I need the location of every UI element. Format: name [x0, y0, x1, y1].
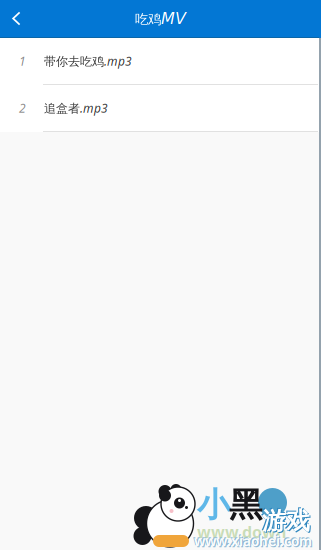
staticText: 带你去吃鸡.mp3 [44, 53, 132, 69]
staticText: 小 [197, 484, 230, 526]
staticText: 黑 [229, 484, 262, 526]
staticText: www.down [197, 521, 286, 543]
staticText: 游戏 [261, 505, 309, 535]
button[interactable]: Back [0, 0, 52, 37]
staticText: www.xiaohei.com [194, 532, 312, 550]
staticText: 游戏 [262, 506, 310, 536]
staticText: 追盒者.mp3 [44, 100, 108, 116]
staticText: www.xiaohei.com [193, 531, 311, 549]
button[interactable]: 2 [0, 85, 321, 132]
staticText: www.xiaohei.com [195, 533, 313, 550]
staticText: 吃鸡MV [135, 9, 186, 28]
staticText: 2 [19, 100, 26, 116]
button[interactable]: 1 [0, 38, 321, 85]
staticText: 1 [19, 53, 26, 69]
staticText: 游戏 [263, 507, 311, 537]
